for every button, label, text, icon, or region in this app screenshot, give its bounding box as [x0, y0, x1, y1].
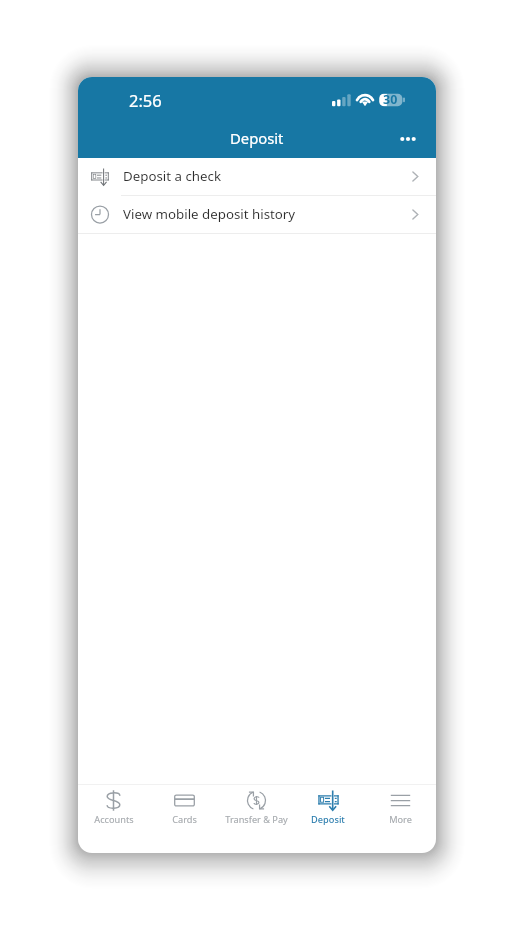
- staticText: Transfer & Pay: [225, 813, 288, 826]
- button[interactable]: View mobile deposit history: [78, 196, 436, 234]
- button[interactable]: Cards: [149, 785, 220, 853]
- staticText: 30: [383, 91, 398, 108]
- staticText: Deposit: [311, 813, 345, 826]
- button[interactable]: Transfer & Pay: [220, 785, 292, 853]
- staticText: Deposit a check: [123, 167, 221, 185]
- button[interactable]: More options: [386, 123, 430, 155]
- button[interactable]: Deposit: [292, 785, 364, 853]
- button[interactable]: Accounts: [78, 785, 149, 853]
- staticText: More: [389, 813, 412, 826]
- staticText: Deposit: [230, 128, 284, 148]
- staticText: View mobile deposit history: [123, 205, 296, 223]
- staticText: 2:56: [129, 89, 162, 111]
- staticText: Cards: [172, 813, 197, 826]
- staticText: Accounts: [94, 813, 134, 826]
- button[interactable]: More: [364, 785, 436, 853]
- button[interactable]: Deposit a check: [78, 158, 436, 196]
